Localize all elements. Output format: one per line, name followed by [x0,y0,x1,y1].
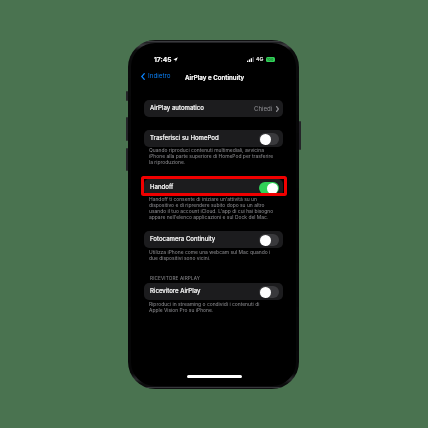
button[interactable]: Indietro [141,72,171,80]
staticText: Handoff ti consente di iniziare un'attiv… [149,196,274,220]
button[interactable]: Ricevitore AirPlay [144,283,283,300]
staticText: AirPlay automatico [150,104,204,111]
button[interactable]: Disattiva [259,182,279,194]
staticText: Indietro [148,72,171,80]
button[interactable]: Attiva [259,286,279,298]
staticText: Ricevitore AirPlay [150,287,201,294]
button[interactable]: Handoff [144,179,283,196]
button[interactable]: Trasferisci su HomePod [144,130,283,147]
staticText: RICEVITORE AIRPLAY [150,275,201,281]
staticText: Fotocamera Continuity [150,235,216,242]
staticText: Handoff [150,183,174,190]
staticText: Quando riproduci contenuti multimediali,… [149,147,274,165]
button[interactable]: Fotocamera Continuity [144,231,283,248]
staticText: Riproduci in streaming o condividi i con… [149,301,274,313]
staticText: Chiedi [254,105,273,112]
staticText: Utilizza iPhone come una webcam sul Mac … [149,249,274,261]
button[interactable]: AirPlay automatico [144,100,283,117]
staticText: 17:45 [154,55,172,63]
button[interactable]: Attiva [259,133,279,145]
button[interactable]: Attiva [259,234,279,246]
staticText: 100 [267,58,274,62]
staticText: AirPlay e Continuity [185,74,245,82]
staticText: Trasferisci su HomePod [150,134,219,141]
staticText: 4G [256,56,264,62]
